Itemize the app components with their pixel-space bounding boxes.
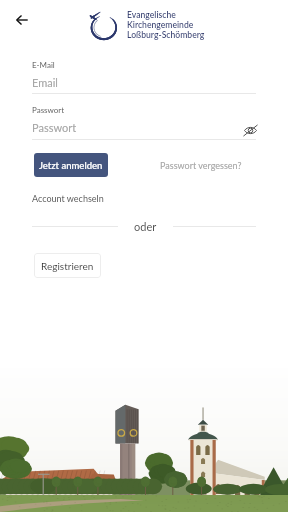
staticText: Evangelische xyxy=(127,10,176,20)
button[interactable]: Account wechseln xyxy=(32,193,104,204)
button[interactable]: Passwort vergessen? xyxy=(160,160,242,171)
staticText: Kirchengemeinde xyxy=(127,20,194,30)
staticText: Email xyxy=(32,76,58,89)
staticText: Passwort xyxy=(32,121,77,134)
staticText: oder xyxy=(134,220,157,233)
staticText: Passwort xyxy=(32,105,65,115)
button[interactable]: Jetzt anmelden xyxy=(34,153,108,177)
staticText: E-Mail xyxy=(32,60,55,70)
staticText: Registrieren xyxy=(41,260,94,272)
button[interactable]: Registrieren xyxy=(34,253,101,278)
staticText: Account wechseln xyxy=(32,193,104,204)
staticText: Loßburg-Schömberg xyxy=(127,30,205,40)
button[interactable]: Show password xyxy=(241,121,259,139)
button[interactable]: Back xyxy=(5,3,39,37)
staticText: Passwort vergessen? xyxy=(160,160,242,171)
staticText: Jetzt anmelden xyxy=(39,160,103,171)
